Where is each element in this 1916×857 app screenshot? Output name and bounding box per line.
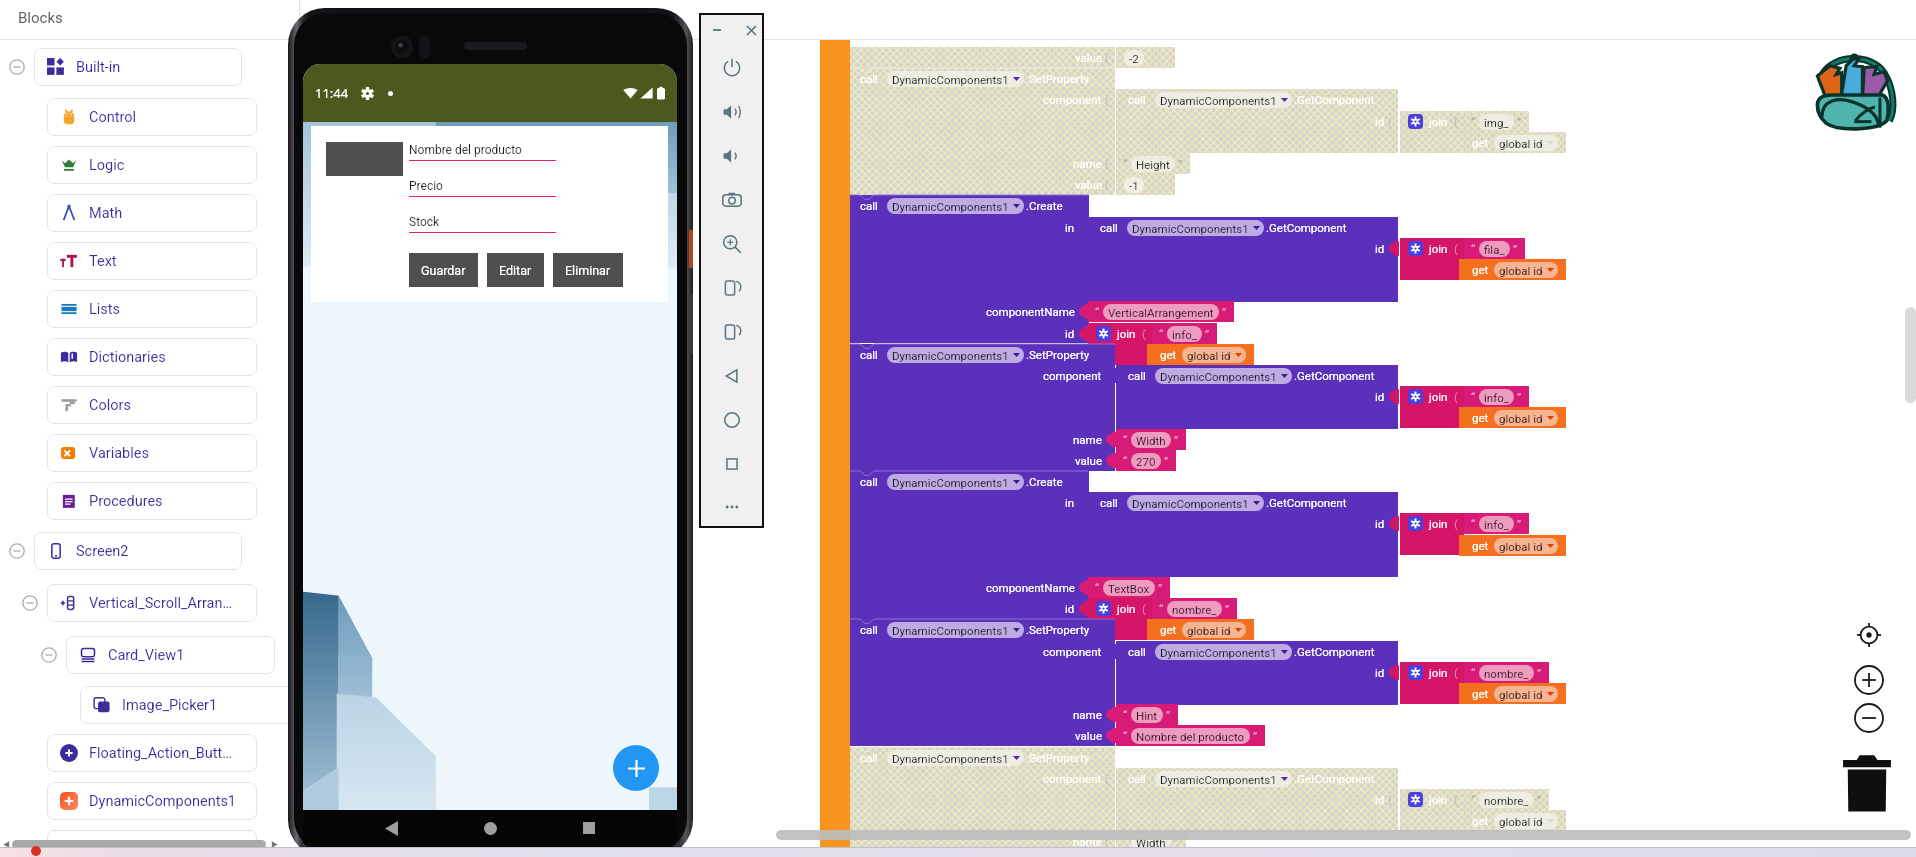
button[interactable]: Built-in (34, 48, 242, 86)
staticText: Screen2 (76, 543, 129, 560)
staticText: ( (1142, 602, 1146, 615)
button[interactable]: Floating_Action_Butt… (47, 734, 257, 772)
button[interactable]: Dictionaries (47, 338, 257, 376)
button[interactable]: Volume up (699, 90, 764, 134)
button[interactable]: Colors (47, 386, 257, 424)
staticText: id (1375, 666, 1385, 679)
button[interactable]: Back (699, 354, 764, 398)
staticText: “ (1095, 581, 1100, 594)
button[interactable]: Volume down (699, 134, 764, 178)
staticText: “ (1471, 390, 1476, 403)
button[interactable]: Collapse Card_View1 (41, 647, 57, 663)
staticText: join (1429, 793, 1448, 806)
staticText: ” (1253, 729, 1258, 742)
staticText: DynamicComponents1 (1132, 222, 1249, 235)
staticText: TextBox (1108, 582, 1150, 595)
button[interactable]: Backpack (1812, 52, 1902, 138)
button[interactable]: Zoom out (1851, 700, 1887, 736)
button[interactable]: More components (47, 830, 257, 857)
staticText: ( (1454, 793, 1458, 806)
staticText: component (1043, 93, 1102, 106)
staticText: DynamicComponents1 (1160, 773, 1277, 786)
staticText: ( (1454, 517, 1458, 530)
button[interactable]: Stock (409, 215, 556, 233)
staticText: .SetProperty (1026, 348, 1090, 361)
staticText: Height (1136, 158, 1170, 171)
button[interactable]: Back (373, 810, 409, 846)
staticText: Dictionaries (89, 349, 166, 366)
staticText: component (1043, 772, 1102, 785)
button[interactable]: Precio (409, 179, 556, 197)
button[interactable]: Editar (487, 253, 544, 287)
staticText: componentName (986, 305, 1075, 318)
staticText: Variables (89, 445, 149, 462)
staticText: nombre_ (1484, 794, 1529, 807)
staticText: .SetProperty (1026, 751, 1090, 764)
staticText: join (1117, 327, 1136, 340)
button[interactable]: Recent apps (571, 810, 607, 846)
staticText: ” (1537, 793, 1542, 806)
staticText: ” (1537, 666, 1542, 679)
button[interactable]: Collapse Screen2 (9, 543, 25, 559)
staticText: .GetComponent (1266, 221, 1347, 234)
staticText: .Create (1026, 199, 1063, 212)
staticText: Math (89, 205, 123, 222)
button[interactable]: Logic (47, 146, 257, 184)
button[interactable]: Nombre del producto (409, 143, 556, 161)
staticText: .SetProperty (1026, 623, 1090, 636)
staticText: nombre_ (1172, 603, 1217, 616)
button[interactable]: Screen2 (34, 532, 242, 570)
staticText: ” (1517, 517, 1522, 530)
staticText: 270 (1136, 455, 1156, 468)
button[interactable]: Minimize (708, 21, 726, 39)
staticText: ” (1158, 581, 1163, 594)
button[interactable]: Overview (699, 442, 764, 486)
button[interactable]: Screenshot (699, 178, 764, 222)
button[interactable]: Home (699, 398, 764, 442)
staticText: Eliminar (565, 263, 611, 278)
button[interactable]: Rotate right (699, 310, 764, 354)
button[interactable]: Collapse Vertical_Scroll_Arran… (22, 595, 38, 611)
button[interactable]: Eliminar (553, 253, 623, 287)
button[interactable]: Vertical_Scroll_Arran… (47, 584, 257, 622)
button[interactable]: More (699, 486, 764, 528)
staticText: name (1073, 433, 1102, 446)
button[interactable]: Close (742, 21, 760, 39)
button[interactable]: Zoom in (1851, 662, 1887, 698)
button[interactable]: Card_View1 (66, 636, 275, 674)
button[interactable]: Trash (1841, 754, 1893, 814)
staticText: “ (1471, 242, 1476, 255)
staticText: ” (1166, 708, 1171, 721)
staticText: ( (1454, 242, 1458, 255)
button[interactable]: Collapse Built-in (9, 59, 25, 75)
button[interactable]: Image_Picker1 (80, 686, 292, 724)
staticText: global id (1499, 540, 1543, 553)
button[interactable]: Guardar (409, 253, 478, 287)
button[interactable]: Home (472, 810, 508, 846)
button[interactable]: DynamicComponents1 (47, 782, 257, 820)
staticText: call (1100, 496, 1118, 509)
button[interactable]: Math (47, 194, 257, 232)
button[interactable]: Variables (47, 434, 257, 472)
staticText: Procedures (89, 493, 163, 510)
staticText: Guardar (421, 263, 466, 278)
staticText: ” (1517, 390, 1522, 403)
button[interactable]: Center blocks (1852, 618, 1886, 652)
button[interactable]: Lists (47, 290, 257, 328)
staticText: Logic (89, 157, 125, 174)
staticText: .GetComponent (1294, 93, 1375, 106)
staticText: ” (1513, 242, 1518, 255)
button[interactable]: Control (47, 98, 257, 136)
staticText: value (1075, 454, 1102, 467)
button[interactable]: Text (47, 242, 257, 280)
button[interactable]: Add product (613, 745, 659, 791)
button[interactable]: Power (699, 46, 764, 90)
staticText: ” (1174, 433, 1179, 446)
staticText: “ (1471, 793, 1476, 806)
button[interactable]: Procedures (47, 482, 257, 520)
button[interactable]: Zoom (699, 222, 764, 266)
staticText: DynamicComponents1 (1132, 497, 1249, 510)
staticText: Floating_Action_Butt… (89, 745, 233, 762)
button[interactable]: Rotate left (699, 266, 764, 310)
